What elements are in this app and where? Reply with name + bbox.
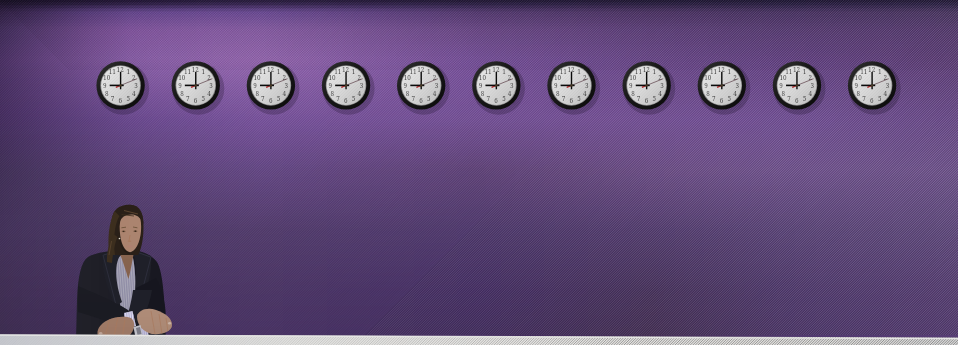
button[interactable] xyxy=(0,0,958,345)
